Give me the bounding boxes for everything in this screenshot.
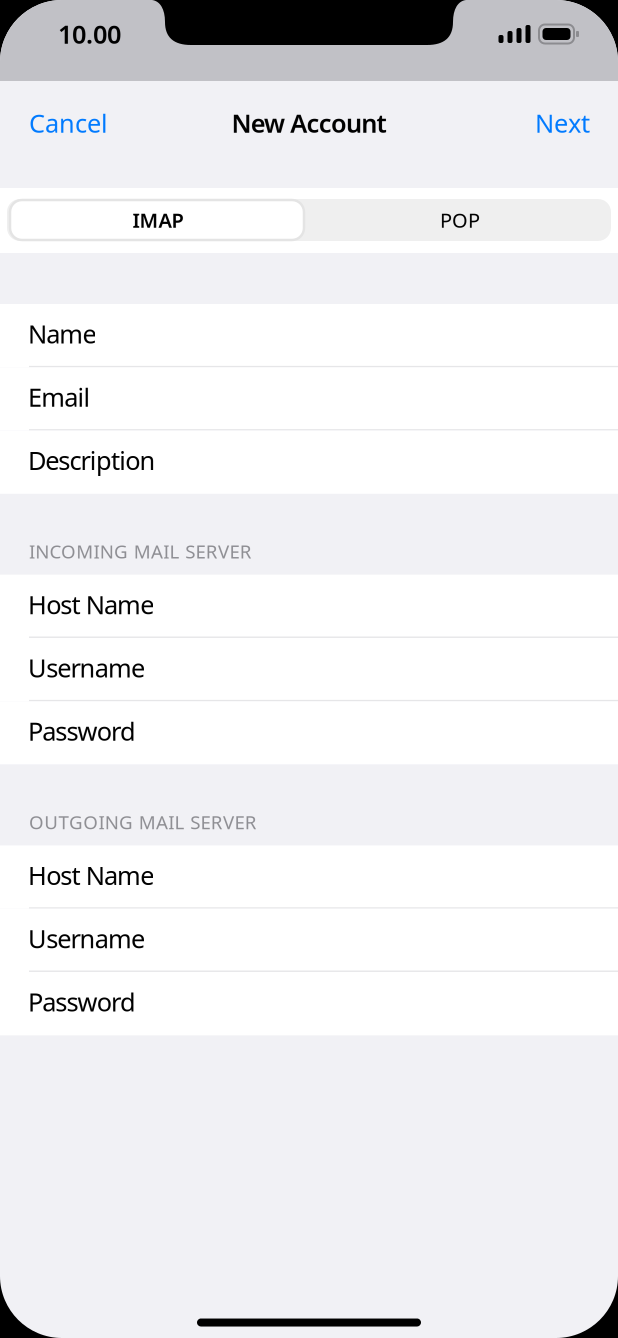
button[interactable]: Email <box>0 367 618 431</box>
staticText: IMAP <box>132 207 183 233</box>
staticText: Cancel <box>29 106 108 140</box>
button[interactable]: Description <box>0 431 618 494</box>
staticText: Username <box>28 921 145 955</box>
staticText: Password <box>28 714 136 748</box>
staticText: INCOMING MAIL SERVER <box>29 539 252 564</box>
button[interactable]: Username <box>0 909 618 972</box>
button[interactable]: Host Name <box>0 845 618 909</box>
staticText: Next <box>535 106 590 140</box>
staticText: 10.00 <box>58 17 121 51</box>
staticText: OUTGOING MAIL SERVER <box>29 810 257 834</box>
button[interactable]: Cancel <box>0 81 137 165</box>
staticText: Username <box>28 651 145 684</box>
button[interactable]: Password <box>0 972 618 1035</box>
staticText: Email <box>28 380 91 414</box>
staticText: POP <box>440 207 480 233</box>
staticText: Description <box>28 443 155 477</box>
button[interactable]: IMAP <box>7 199 309 241</box>
staticText: Name <box>28 317 96 350</box>
staticText: New Account <box>231 106 386 140</box>
staticText: Host Name <box>28 587 154 621</box>
button[interactable]: Username <box>0 638 618 701</box>
button[interactable]: Name <box>0 304 618 367</box>
button[interactable]: POP <box>309 199 611 241</box>
button[interactable]: Host Name <box>0 575 618 638</box>
button[interactable]: Password <box>0 701 618 765</box>
button[interactable]: Next <box>507 81 618 165</box>
staticText: Host Name <box>28 858 154 892</box>
staticText: Password <box>28 985 136 1018</box>
